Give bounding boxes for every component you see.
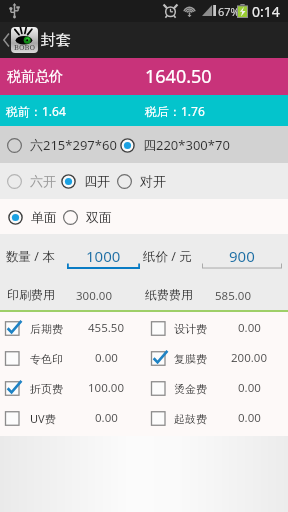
- button[interactable]: 折页费: [5, 374, 63, 403]
- staticText: 起鼓费: [174, 412, 207, 426]
- staticText: 数量 / 本: [6, 248, 55, 265]
- button[interactable]: 六开: [7, 173, 56, 189]
- staticText: 四220*300*70: [143, 136, 230, 154]
- staticText: 后期费: [30, 322, 63, 336]
- staticText: 300.00: [76, 288, 112, 304]
- staticText: 纸价 / 元: [143, 248, 192, 265]
- staticText: 1640.50: [145, 64, 212, 89]
- button[interactable]: 复膜费: [151, 344, 207, 373]
- staticText: 0.00: [238, 320, 261, 336]
- staticText: 税前总价: [7, 68, 63, 86]
- button[interactable]: 四220*300*70: [120, 136, 230, 154]
- staticText: 复膜费: [174, 352, 207, 366]
- staticText: 67%: [218, 4, 240, 19]
- button[interactable]: UV费: [5, 404, 56, 433]
- staticText: 0:14: [252, 2, 280, 21]
- staticText: 六开: [30, 173, 56, 189]
- staticText: 税后：1.76: [145, 103, 205, 119]
- staticText: 四开: [84, 173, 110, 189]
- staticText: 0.00: [238, 410, 261, 426]
- button[interactable]: Navigate up: [0, 22, 38, 58]
- staticText: 六215*297*60: [30, 136, 117, 154]
- staticText: 封套: [41, 31, 71, 50]
- staticText: 折页费: [30, 382, 63, 396]
- button[interactable]: 烫金费: [151, 374, 207, 403]
- button[interactable]: 后期费: [5, 314, 63, 343]
- staticText: 设计费: [174, 322, 207, 336]
- staticText: 1000: [86, 246, 121, 266]
- staticText: 单面: [31, 209, 57, 225]
- staticText: 对开: [140, 173, 166, 189]
- staticText: 纸费费用: [145, 287, 193, 302]
- staticText: 100.00: [88, 380, 124, 396]
- button[interactable]: 四开: [61, 173, 110, 189]
- staticText: 税前：1.64: [6, 103, 66, 119]
- button[interactable]: 1000: [67, 243, 140, 269]
- staticText: 200.00: [231, 350, 267, 366]
- staticText: 0.00: [95, 410, 118, 426]
- staticText: 0.00: [95, 350, 118, 366]
- button[interactable]: 双面: [63, 209, 112, 225]
- staticText: 455.50: [88, 320, 124, 336]
- staticText: BOBO: [11, 42, 38, 52]
- staticText: 900: [229, 246, 255, 266]
- staticText: 0.00: [238, 380, 261, 396]
- staticText: 印刷费用: [7, 287, 55, 302]
- button[interactable]: 900: [202, 243, 282, 269]
- staticText: 双面: [86, 209, 112, 225]
- staticText: 专色印: [30, 352, 63, 366]
- button[interactable]: 设计费: [151, 314, 207, 343]
- button[interactable]: 专色印: [5, 344, 63, 373]
- staticText: 585.00: [215, 288, 251, 304]
- button[interactable]: 六215*297*60: [7, 136, 117, 154]
- button[interactable]: 单面: [8, 209, 57, 225]
- staticText: UV费: [30, 411, 56, 426]
- staticText: 烫金费: [174, 382, 207, 396]
- button[interactable]: 起鼓费: [151, 404, 207, 433]
- button[interactable]: 对开: [117, 173, 166, 189]
